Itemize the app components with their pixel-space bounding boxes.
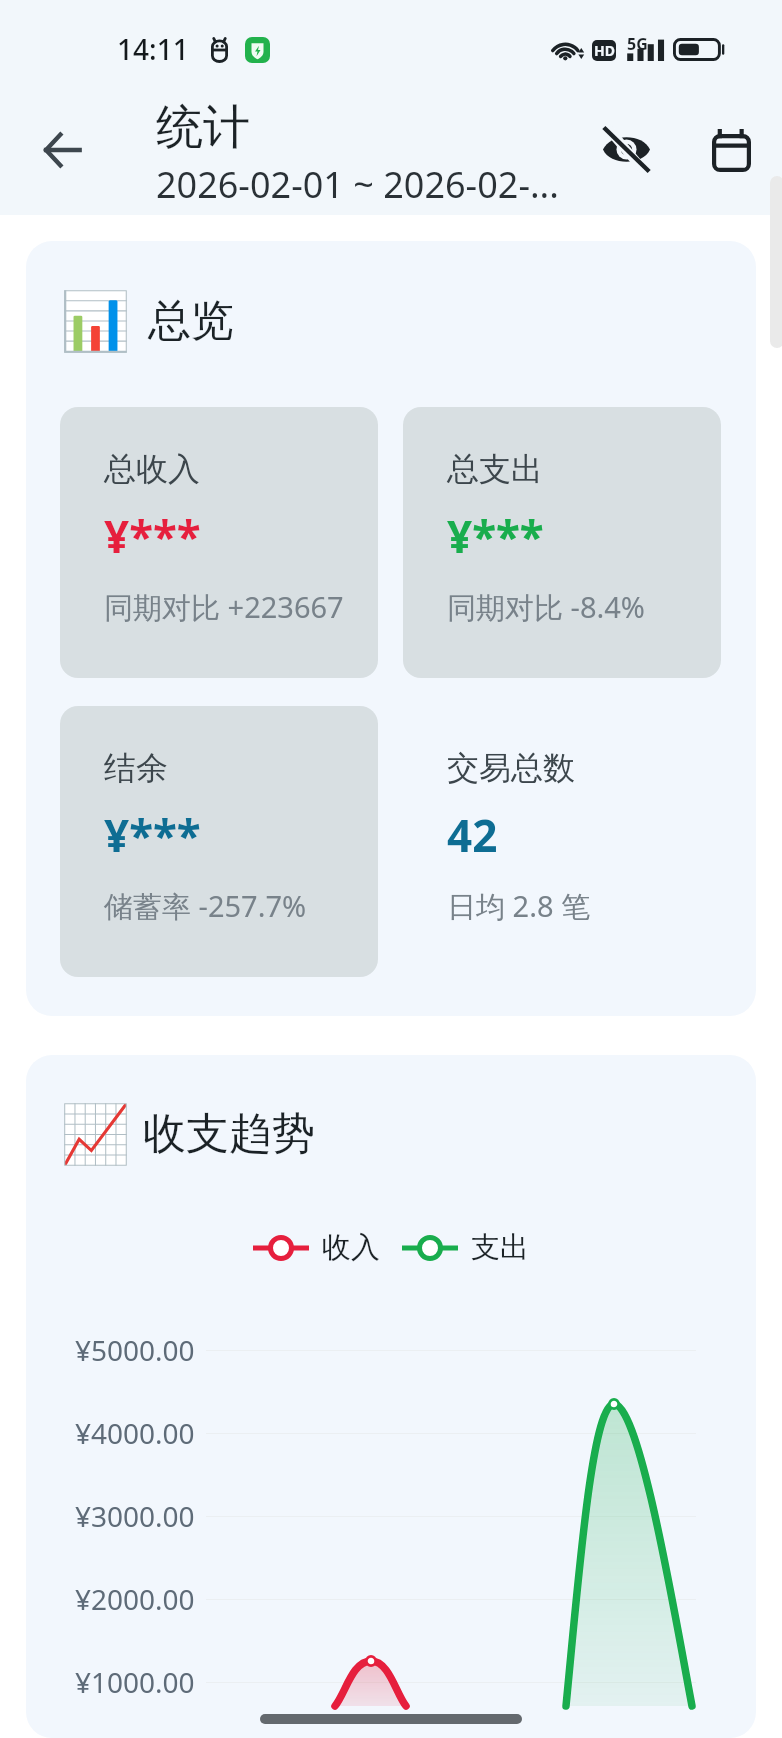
staticText: ¥2000.00: [75, 1580, 235, 1618]
staticText: ¥***: [104, 506, 201, 566]
button[interactable]: 隐藏金额: [588, 111, 664, 187]
button[interactable]: 选择日期: [692, 111, 770, 189]
staticText: ¥5000.00: [75, 1331, 235, 1369]
staticText: 收入: [322, 1229, 380, 1266]
staticText: 同期对比 -8.4%: [447, 587, 645, 627]
staticText: 总览: [148, 294, 234, 348]
staticText: 2026-02-01 ~ 2026-02-...: [156, 160, 559, 209]
staticText: ¥4000.00: [75, 1414, 235, 1452]
staticText: 📊: [60, 288, 131, 355]
staticText: 统计: [156, 98, 250, 157]
staticText: 5G: [627, 33, 648, 55]
staticText: HD: [594, 41, 615, 60]
staticText: 14:11: [117, 30, 189, 68]
button[interactable]: 总收入: [60, 407, 378, 678]
staticText: 总收入: [104, 449, 200, 489]
button[interactable]: 交易总数: [403, 706, 721, 977]
staticText: ¥3000.00: [75, 1497, 235, 1535]
button[interactable]: 结余: [60, 706, 378, 977]
staticText: ¥***: [104, 805, 201, 865]
button[interactable]: 📈: [26, 1055, 756, 1738]
staticText: 日均 2.8 笔: [447, 886, 591, 926]
button[interactable]: 返回: [24, 112, 100, 188]
staticText: 收支趋势: [143, 1107, 315, 1161]
staticText: 支出: [471, 1229, 529, 1266]
staticText: 42: [447, 805, 498, 865]
staticText: ¥1000.00: [75, 1663, 235, 1701]
staticText: 交易总数: [447, 748, 575, 788]
staticText: 同期对比 +223667: [104, 587, 344, 627]
staticText: 结余: [104, 748, 168, 788]
button[interactable]: 总支出: [403, 407, 721, 678]
button[interactable]: 📊: [26, 241, 756, 1016]
staticText: 储蓄率 -257.7%: [104, 886, 307, 926]
staticText: ¥***: [447, 506, 544, 566]
staticText: 📈: [60, 1101, 131, 1168]
staticText: 总支出: [447, 449, 543, 489]
